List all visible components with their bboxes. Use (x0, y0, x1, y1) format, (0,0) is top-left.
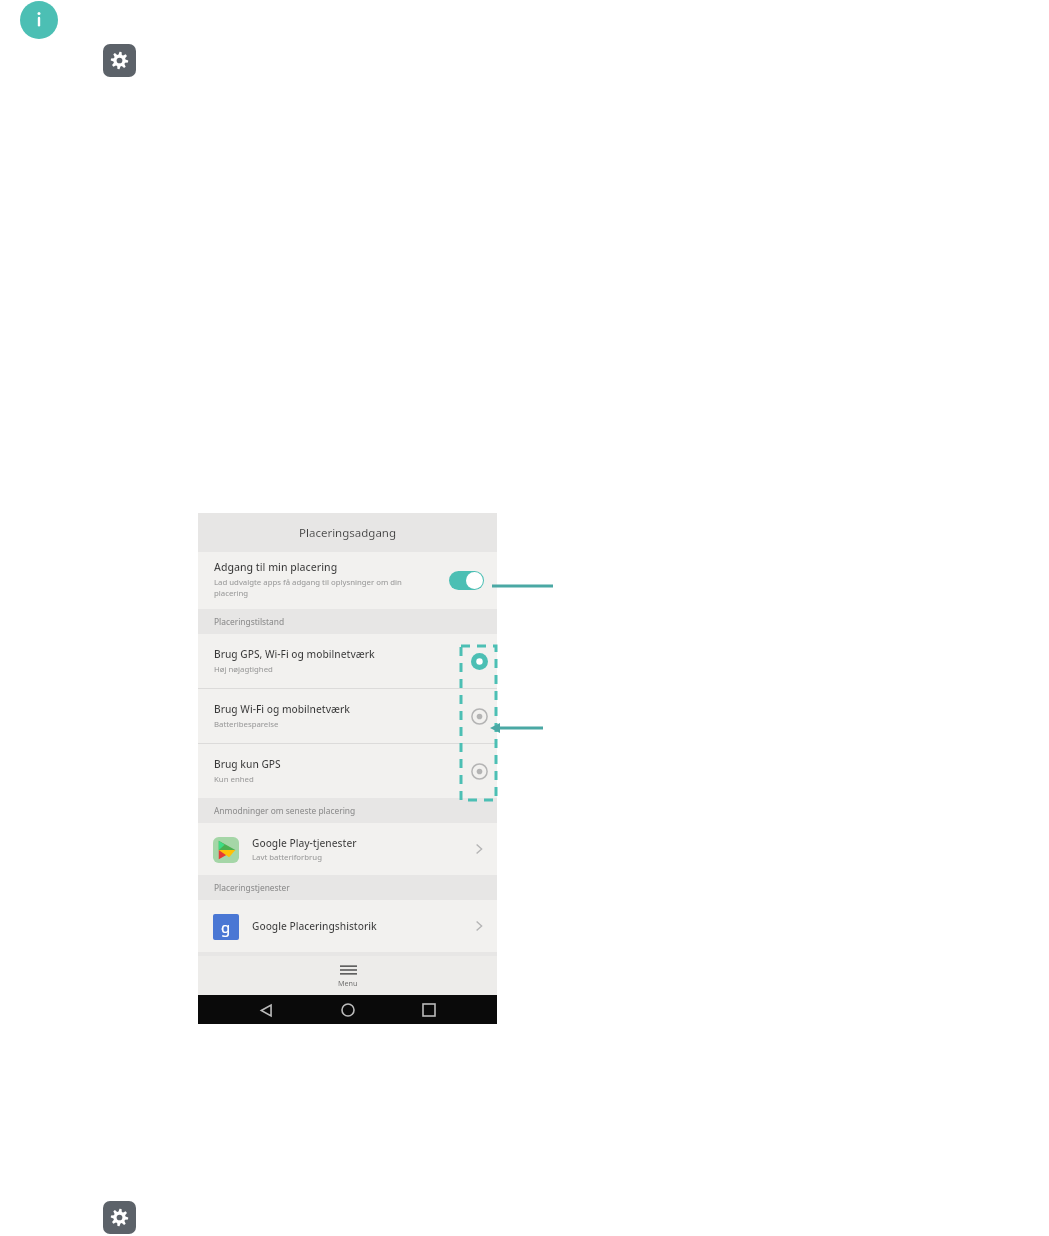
button[interactable]: Menu (198, 956, 497, 995)
button[interactable]: Brug GPS, Wi-Fi og mobilnetværk (198, 634, 497, 688)
staticText: Google Placeringshistorik (252, 919, 377, 933)
button[interactable]: Brug Wi-Fi og mobilnetværk (467, 704, 491, 728)
button[interactable]: Brug GPS, Wi-Fi og mobilnetværk (467, 649, 491, 673)
staticText: Placeringstilstand (214, 616, 285, 627)
staticText: Google Play-tjenester (252, 836, 357, 850)
staticText: Lavt batteriforbrug (252, 852, 322, 863)
button[interactable]: Settings (103, 44, 136, 77)
button[interactable]: Home (335, 997, 361, 1023)
button[interactable]: Google Play-tjenester (198, 823, 497, 875)
button[interactable]: Brug kun GPS (467, 759, 491, 783)
button[interactable]: Brug Wi-Fi og mobilnetværk (198, 689, 497, 743)
staticText: Placeringsadgang (299, 525, 397, 541)
button[interactable]: Brug kun GPS (198, 744, 497, 798)
staticText: Brug kun GPS (214, 757, 281, 771)
staticText: Lad udvalgte apps få adgang til oplysnin… (214, 577, 402, 588)
staticText: Brug GPS, Wi-Fi og mobilnetværk (214, 647, 375, 661)
button[interactable]: Adgang til min placering (198, 552, 497, 609)
staticText: g (221, 917, 231, 937)
button[interactable]: Location toggle (449, 571, 484, 590)
staticText: Placeringstjenester (214, 882, 290, 893)
staticText: Høj nøjagtighed (214, 664, 273, 675)
staticText: Kun enhed (214, 774, 254, 785)
button[interactable]: Info (20, 1, 58, 39)
button[interactable]: Recents (416, 997, 442, 1023)
button[interactable]: g (198, 900, 497, 952)
staticText: Batteribesparelse (214, 719, 279, 730)
staticText: placering (214, 588, 249, 599)
staticText: Menu (338, 978, 358, 988)
button[interactable]: Back (253, 997, 279, 1023)
staticText: Brug Wi-Fi og mobilnetværk (214, 702, 351, 716)
staticText: Adgang til min placering (214, 560, 338, 574)
button[interactable]: Settings (103, 1201, 136, 1234)
staticText: Anmodninger om seneste placering (214, 805, 356, 816)
